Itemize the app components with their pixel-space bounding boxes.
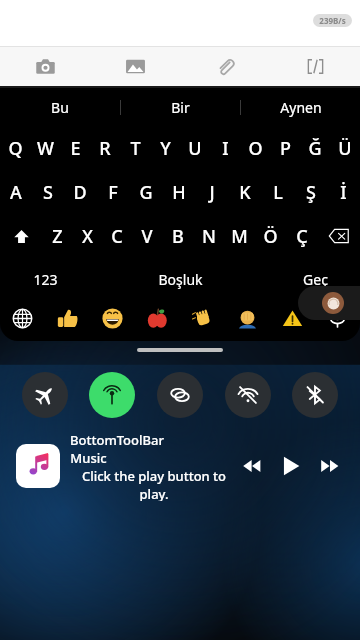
button[interactable]: İ: [327, 175, 360, 209]
button[interactable]: Boşluk: [90, 265, 270, 293]
staticText: V: [141, 224, 153, 249]
staticText: E: [70, 136, 81, 161]
button[interactable]: Thumbs up: [45, 301, 90, 335]
staticText: İ: [340, 180, 347, 205]
button[interactable]: O: [240, 131, 270, 165]
button[interactable]: W: [30, 131, 60, 165]
button[interactable]: Ö: [255, 219, 286, 253]
staticText: W: [37, 136, 54, 161]
button[interactable]: U: [180, 131, 210, 165]
staticText: Ş: [306, 180, 316, 205]
button[interactable]: B: [162, 219, 193, 253]
staticText: F: [108, 180, 118, 205]
staticText: L: [273, 180, 283, 205]
button[interactable]: Waving hand: [180, 301, 225, 335]
button[interactable]: S: [32, 175, 64, 209]
staticText: I: [222, 136, 229, 161]
staticText: Ç: [296, 224, 308, 249]
button[interactable]: Voice input: [315, 301, 360, 335]
staticText: 123: [33, 270, 58, 289]
button[interactable]: X: [72, 219, 102, 253]
button[interactable]: Language: [0, 301, 45, 335]
staticText: B: [172, 224, 184, 249]
button[interactable]: Previous: [238, 452, 266, 480]
button[interactable]: Warning: [270, 301, 315, 335]
staticText: Music: [70, 449, 107, 467]
staticText: Aynen: [280, 98, 322, 117]
button[interactable]: G: [129, 175, 162, 209]
button[interactable]: Shift: [0, 219, 42, 253]
button[interactable]: Bluetooth off: [292, 372, 338, 418]
button[interactable]: Bir: [121, 91, 240, 123]
button[interactable]: C: [102, 219, 132, 253]
staticText: K: [239, 180, 251, 205]
button[interactable]: I: [210, 131, 240, 165]
button[interactable]: 123: [0, 265, 90, 293]
button[interactable]: Wi-Fi off: [225, 372, 271, 418]
staticText: H: [172, 180, 186, 205]
staticText: A: [10, 180, 22, 205]
button[interactable]: Bu: [0, 91, 120, 123]
button[interactable]: Ü: [330, 131, 360, 165]
button[interactable]: L: [261, 175, 294, 209]
button[interactable]: Insert code: [270, 47, 360, 86]
staticText: Geç: [303, 270, 328, 289]
staticText: Click the play button to play.: [70, 467, 238, 501]
button[interactable]: Q: [0, 131, 30, 165]
staticText: Bu: [51, 98, 69, 117]
staticText: G: [139, 180, 153, 205]
button[interactable]: F: [96, 175, 129, 209]
button[interactable]: Airplane mode: [22, 372, 68, 418]
button[interactable]: P: [270, 131, 300, 165]
button[interactable]: Ş: [294, 175, 327, 209]
button[interactable]: D: [64, 175, 96, 209]
staticText: J: [209, 180, 215, 205]
button[interactable]: E: [60, 131, 90, 165]
button[interactable]: V: [132, 219, 162, 253]
button[interactable]: Gallery: [90, 47, 180, 86]
staticText: Ğ: [308, 136, 322, 161]
staticText: S: [43, 180, 53, 205]
button[interactable]: Hotspot: [157, 372, 203, 418]
button[interactable]: Ğ: [300, 131, 330, 165]
button[interactable]: BottomToolBar: [16, 431, 344, 501]
button[interactable]: Play: [276, 451, 306, 481]
staticText: U: [188, 136, 202, 161]
button[interactable]: J: [195, 175, 228, 209]
staticText: M: [231, 224, 248, 249]
staticText: Q: [8, 136, 23, 161]
button[interactable]: Geç: [270, 265, 360, 293]
button[interactable]: Backspace: [317, 219, 360, 253]
staticText: D: [73, 180, 87, 205]
button[interactable]: H: [162, 175, 195, 209]
button[interactable]: K: [228, 175, 261, 209]
staticText: 239B/s: [319, 15, 346, 26]
staticText: N: [202, 224, 216, 249]
staticText: Z: [52, 224, 63, 249]
button[interactable]: Facepalm: [225, 301, 270, 335]
staticText: Bir: [171, 98, 190, 117]
button[interactable]: Next: [316, 452, 344, 480]
staticText: R: [99, 136, 111, 161]
button[interactable]: A: [0, 175, 32, 209]
button[interactable]: Mobile data: [89, 372, 135, 418]
button[interactable]: Grinning face: [90, 301, 135, 335]
staticText: Ü: [338, 136, 352, 161]
staticText: Y: [160, 136, 171, 161]
button[interactable]: Attach file: [180, 47, 270, 86]
button[interactable]: Y: [150, 131, 180, 165]
staticText: P: [280, 136, 291, 161]
button[interactable]: T: [120, 131, 150, 165]
button[interactable]: N: [193, 219, 224, 253]
button[interactable]: M: [224, 219, 255, 253]
button[interactable]: Z: [42, 219, 72, 253]
staticText: T: [130, 136, 141, 161]
button[interactable]: Aynen: [241, 91, 360, 123]
button[interactable]: Ç: [286, 219, 317, 253]
staticText: X: [82, 224, 93, 249]
button[interactable]: Camera: [0, 47, 90, 86]
button[interactable]: R: [90, 131, 120, 165]
button[interactable]: Assistant: [298, 286, 360, 320]
staticText: O: [248, 136, 263, 161]
button[interactable]: Apple: [135, 301, 180, 335]
